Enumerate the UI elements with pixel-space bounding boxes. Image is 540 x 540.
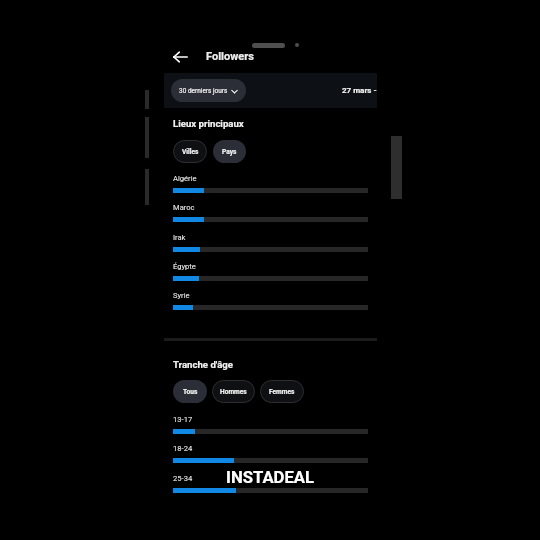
staticText: 13-17 bbox=[173, 415, 193, 424]
staticText: Maroc bbox=[173, 203, 195, 212]
staticText: Followers bbox=[206, 50, 254, 63]
button[interactable]: 25-34 bbox=[173, 474, 368, 493]
staticText: Lieux principaux bbox=[173, 118, 244, 129]
button[interactable]: Hommes bbox=[212, 380, 255, 403]
button[interactable]: Algérie bbox=[173, 174, 368, 193]
button[interactable]: Villes bbox=[173, 140, 207, 163]
staticText: 25-34 bbox=[173, 474, 193, 483]
staticText: Tous bbox=[183, 388, 198, 396]
button[interactable]: Pays bbox=[213, 140, 246, 163]
staticText: Irak bbox=[173, 233, 186, 242]
button[interactable]: Maroc bbox=[173, 203, 368, 222]
button[interactable]: Femmes bbox=[260, 380, 304, 403]
staticText: 18-24 bbox=[173, 444, 193, 453]
button[interactable]: Égypte bbox=[173, 262, 368, 281]
button[interactable]: Syrie bbox=[173, 291, 368, 310]
button[interactable]: 30 derniers jours bbox=[171, 79, 246, 102]
staticText: 30 derniers jours bbox=[179, 87, 228, 95]
button[interactable]: 18-24 bbox=[173, 444, 368, 463]
button[interactable]: Irak bbox=[173, 233, 368, 252]
staticText: Villes bbox=[182, 148, 199, 156]
staticText: Femmes bbox=[269, 388, 295, 396]
staticText: Égypte bbox=[173, 262, 196, 271]
button[interactable]: 13-17 bbox=[173, 415, 368, 434]
button[interactable]: Back bbox=[169, 45, 191, 67]
staticText: Pays bbox=[222, 148, 237, 156]
staticText: INSTADEAL bbox=[226, 468, 315, 488]
staticText: Algérie bbox=[173, 174, 197, 183]
staticText: 27 mars - bbox=[342, 86, 377, 95]
staticText: Hommes bbox=[220, 388, 247, 396]
staticText: Tranche d'âge bbox=[173, 359, 233, 370]
staticText: Syrie bbox=[173, 291, 190, 300]
button[interactable]: Tous bbox=[173, 380, 207, 403]
